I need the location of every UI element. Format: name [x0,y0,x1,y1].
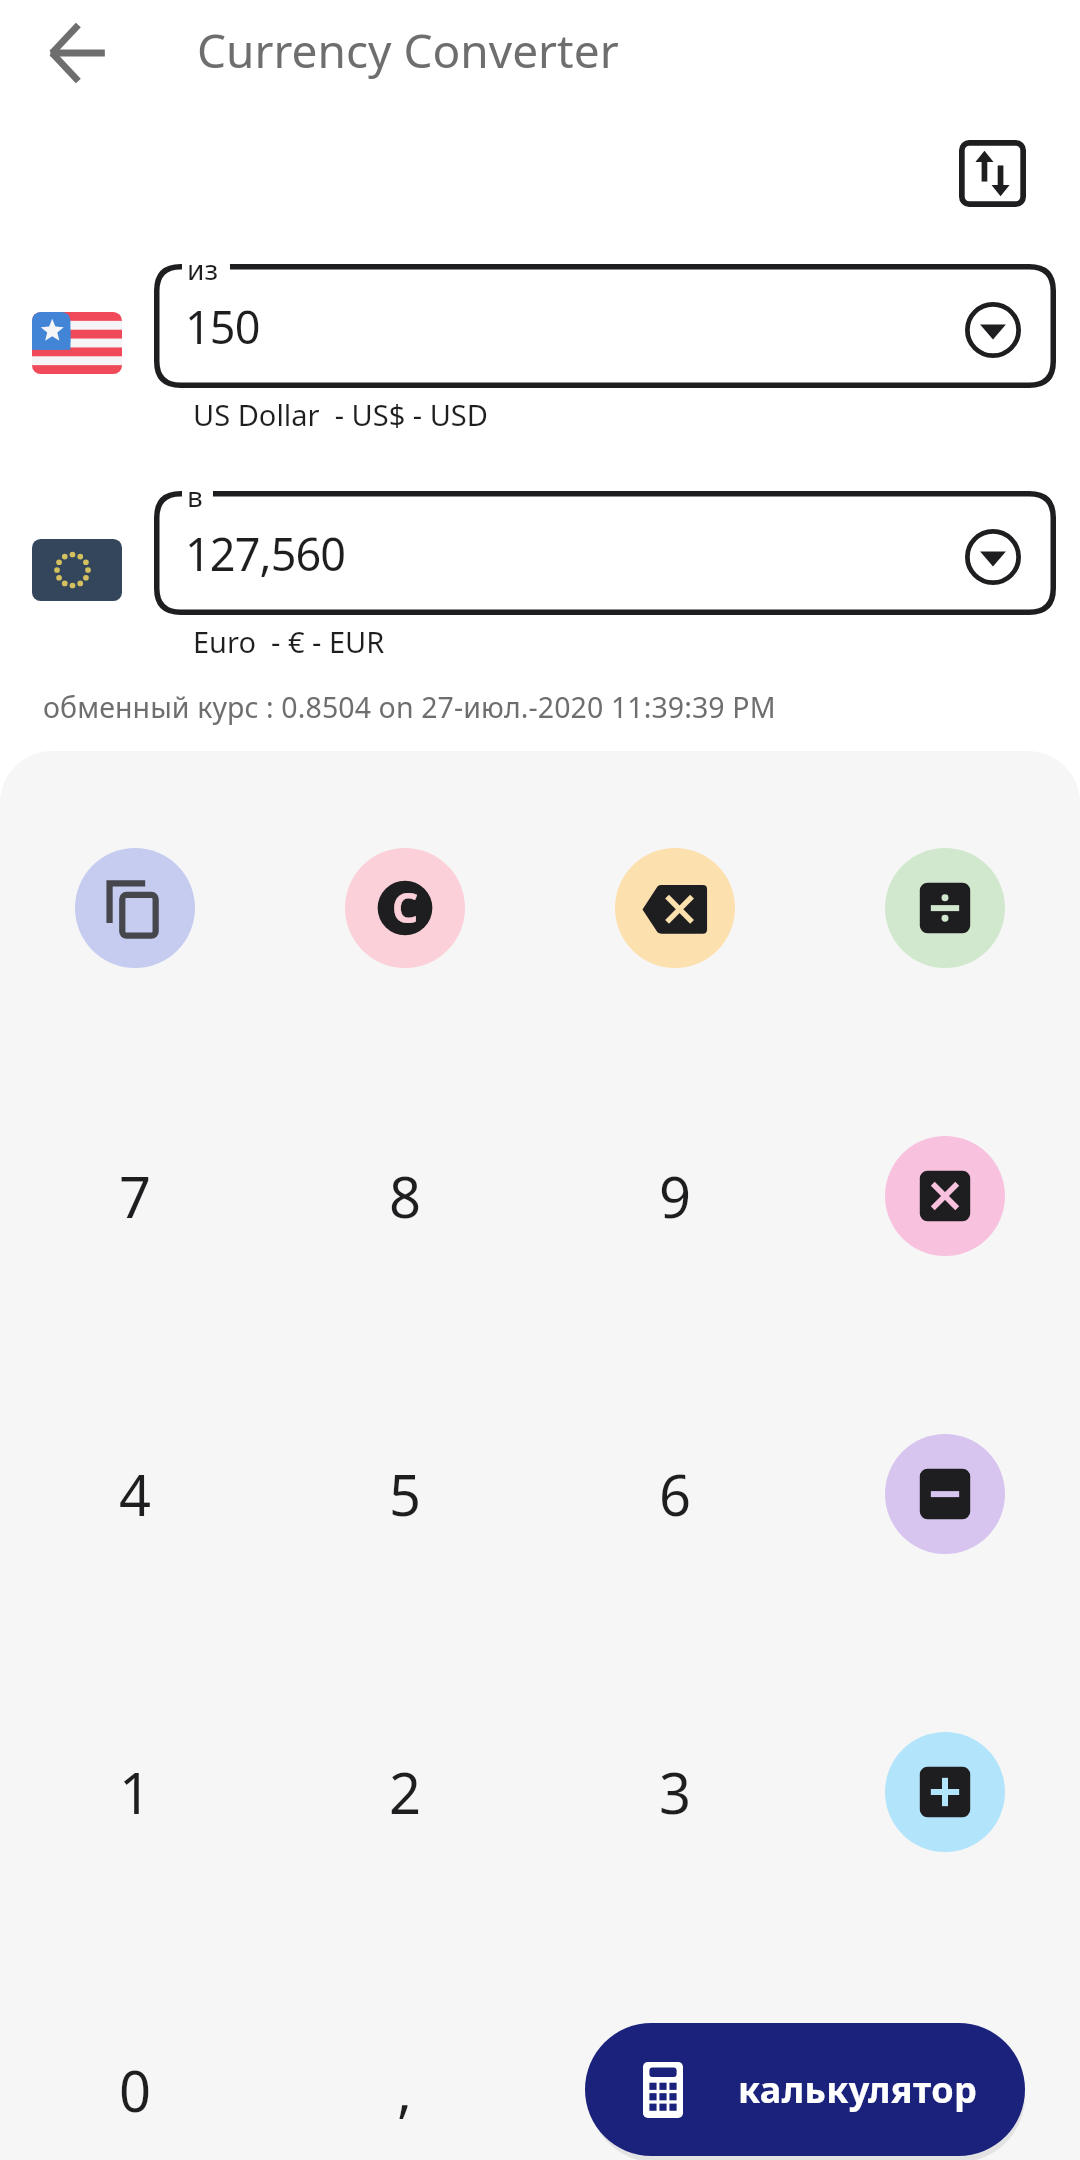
button[interactable]: 5 [270,1394,540,1594]
button[interactable]: калькулятор [585,2023,1025,2156]
button[interactable]: 2 [270,1692,540,1892]
button[interactable]: , [270,1990,540,2160]
staticText: обменный курс : 0.8504 on 27-июл.-2020 1… [43,688,776,727]
staticText: 5 [389,1456,422,1532]
button[interactable]: Swap currencies [950,131,1034,215]
button[interactable]: Select currency [963,523,1023,583]
staticText: 7 [119,1158,152,1234]
staticText: 6 [659,1456,692,1532]
staticText: из [187,250,219,288]
button[interactable]: Clear [345,848,465,968]
button[interactable]: 1 [0,1692,270,1892]
staticText: 2 [389,1754,422,1830]
staticText: Euro - € - EUR [193,622,385,661]
button[interactable]: 4 [0,1394,270,1594]
staticText: 4 [119,1456,152,1532]
staticText: в [187,477,203,515]
staticText: 150 [185,296,260,357]
button[interactable]: Divide [885,848,1005,968]
staticText: 8 [389,1158,422,1234]
staticText: US Dollar - US$ - USD [193,395,488,434]
button[interactable]: Multiply [885,1136,1005,1256]
staticText: 1 [119,1754,152,1830]
staticText: , [397,2052,413,2128]
button[interactable]: 8 [270,1096,540,1296]
staticText: 3 [659,1754,692,1830]
button[interactable]: 9 [540,1096,810,1296]
button[interactable]: Back [45,21,109,85]
staticText: Currency Converter [197,19,619,82]
button[interactable]: 0 [0,1990,270,2160]
staticText: 9 [659,1158,692,1234]
button[interactable]: 3 [540,1692,810,1892]
staticText: 0 [119,2052,152,2128]
staticText: C [392,879,419,935]
button[interactable]: Copy [75,848,195,968]
button[interactable]: Backspace [615,848,735,968]
button[interactable]: Minus [885,1434,1005,1554]
button[interactable]: 7 [0,1096,270,1296]
button[interactable]: Select currency [963,296,1023,356]
button[interactable]: 6 [540,1394,810,1594]
staticText: калькулятор [738,2065,978,2114]
staticText: 127,560 [185,523,346,584]
button[interactable]: Plus [885,1732,1005,1852]
